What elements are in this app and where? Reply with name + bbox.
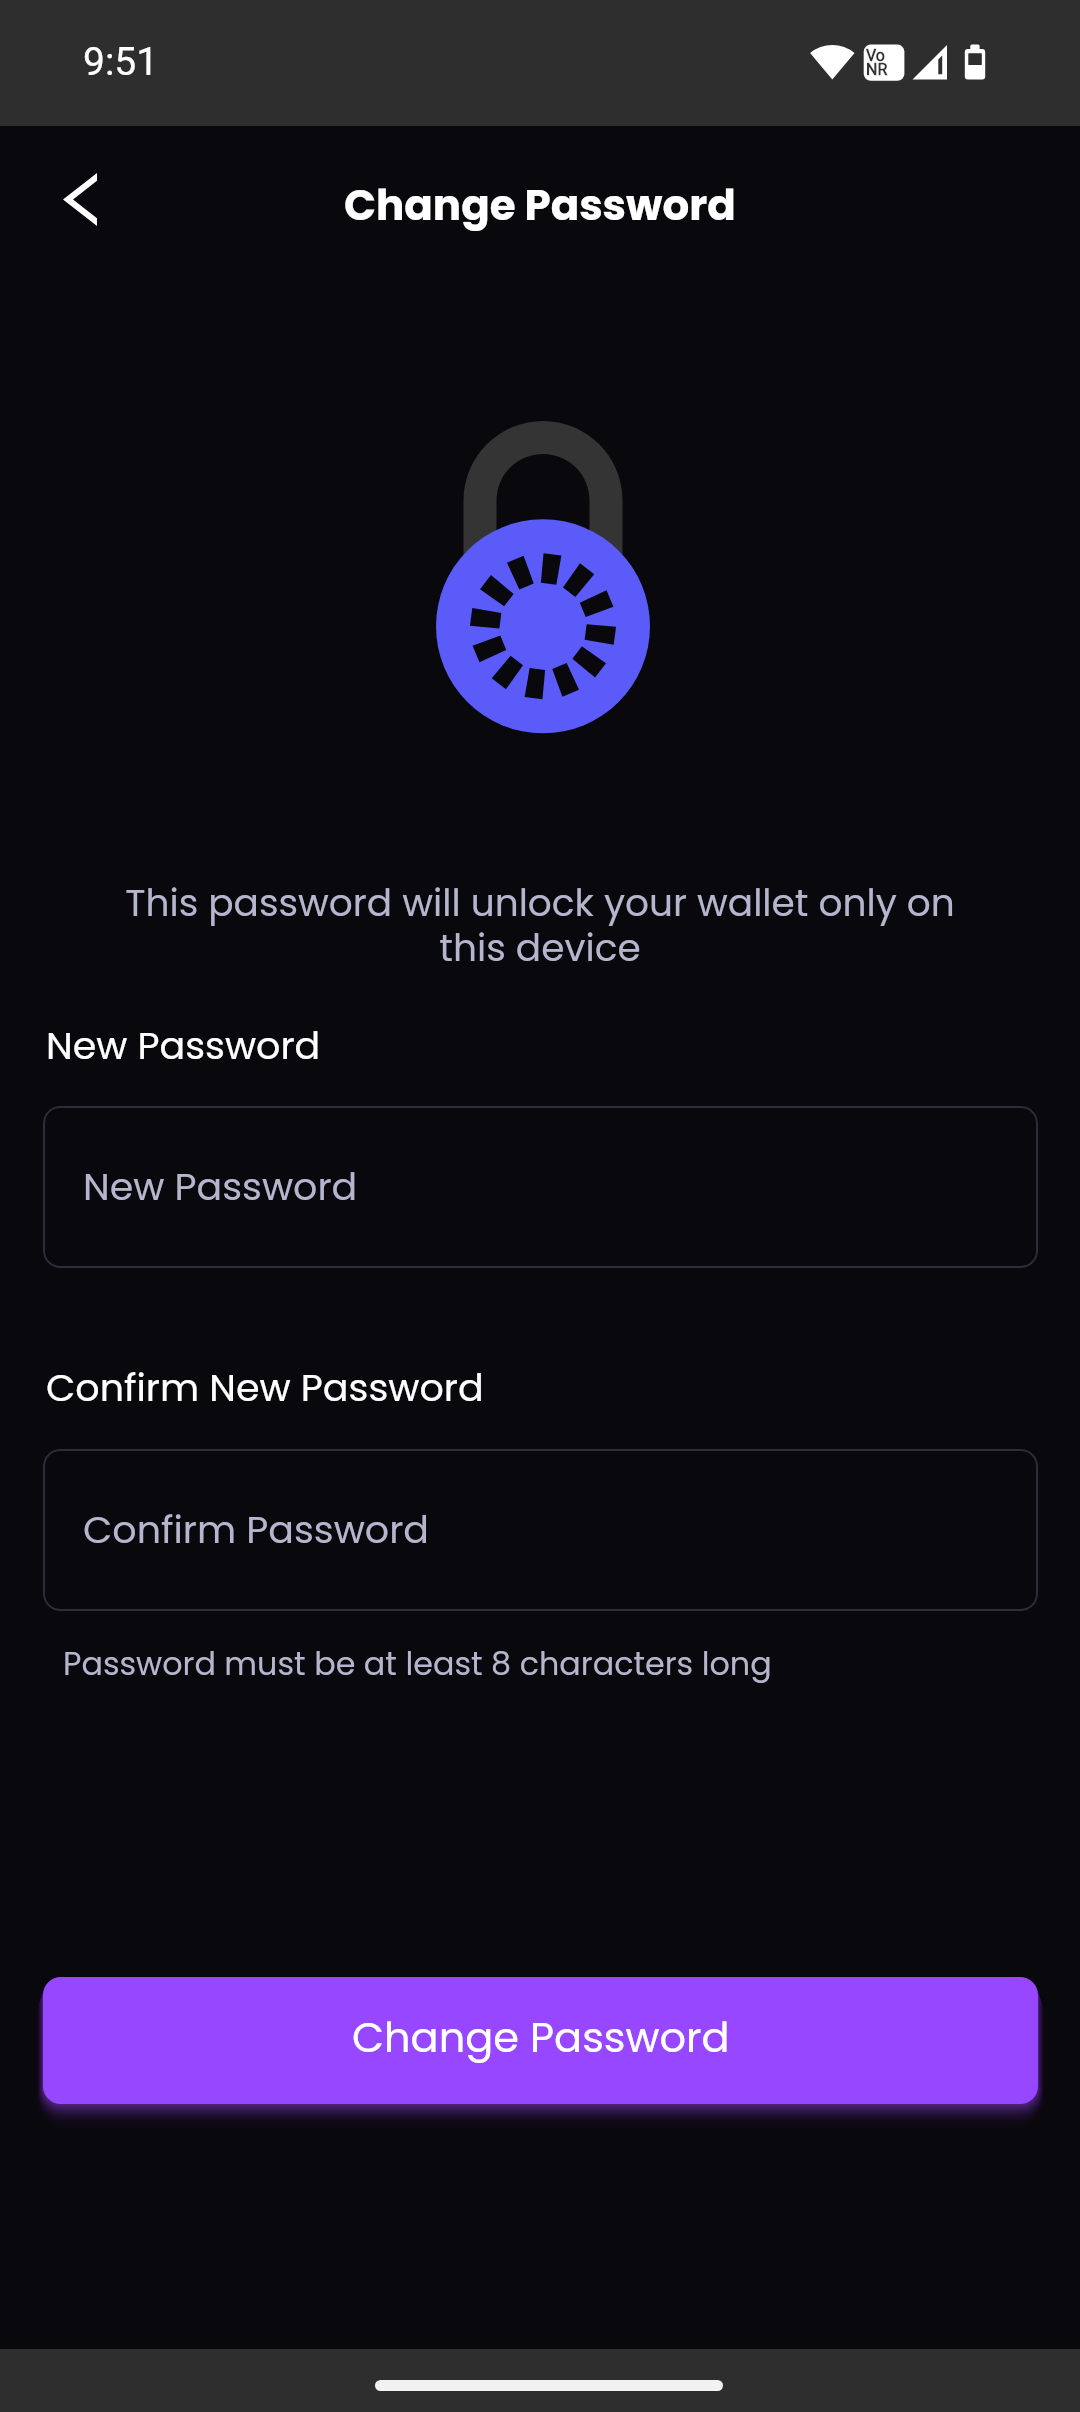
button[interactable]: Change Password	[43, 1977, 1038, 2104]
staticText: Confirm Password	[83, 1503, 429, 1556]
staticText: Vo NR	[866, 46, 888, 79]
button[interactable]: Back	[40, 160, 120, 240]
staticText: Password must be at least 8 characters l…	[63, 1642, 772, 1687]
staticText: Confirm New Password	[46, 1361, 484, 1414]
staticText: New Password	[83, 1160, 358, 1213]
staticText: Change Password	[344, 176, 736, 235]
staticText: New Password	[46, 1019, 321, 1072]
staticText: 9:51	[83, 39, 159, 85]
button[interactable]: New Password	[43, 1106, 1038, 1268]
staticText: This password will unlock your wallet on…	[110, 877, 970, 974]
staticText: Change Password	[352, 2008, 730, 2066]
button[interactable]: Confirm Password	[43, 1449, 1038, 1611]
